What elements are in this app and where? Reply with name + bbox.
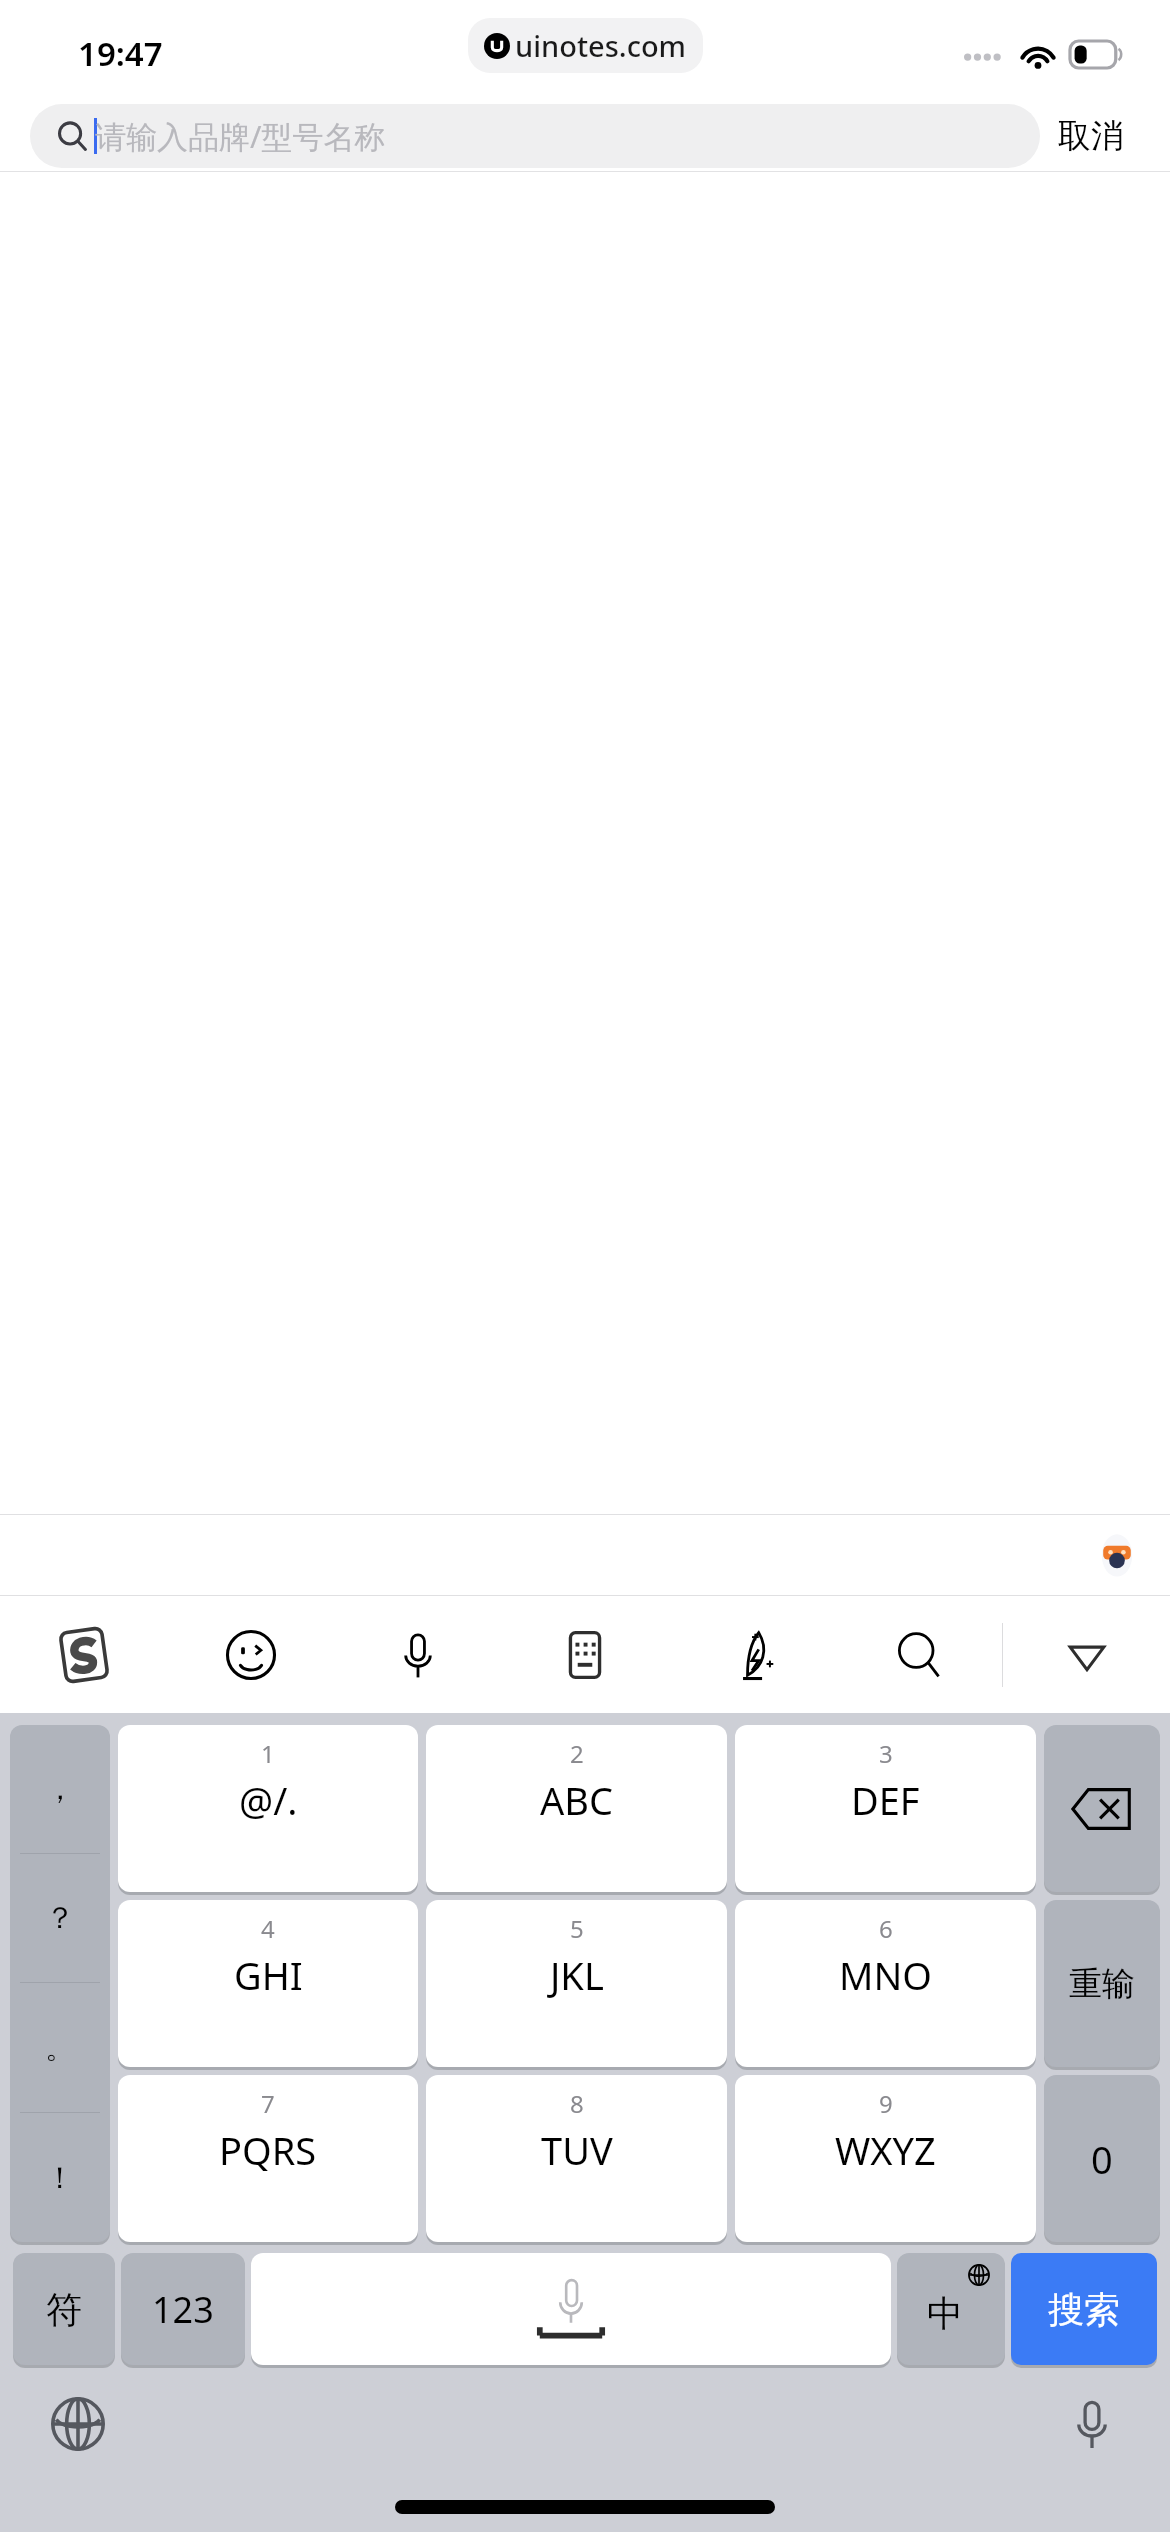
staticText: 0 bbox=[1091, 2133, 1113, 2185]
staticText: 6 bbox=[879, 1912, 893, 1945]
button[interactable]: 4 bbox=[118, 1900, 418, 2067]
button[interactable]: ， bbox=[10, 1725, 110, 2242]
staticText: 请输入品牌/型号名称 bbox=[95, 115, 386, 157]
staticText: 8 bbox=[570, 2087, 584, 2120]
staticText: @/. bbox=[239, 1774, 298, 1826]
staticText: TUV bbox=[541, 2124, 613, 2176]
staticText: 4 bbox=[261, 1912, 275, 1945]
staticText: 符 bbox=[46, 2287, 82, 2332]
staticText: 9 bbox=[879, 2087, 893, 2120]
staticText: 19:47 bbox=[78, 31, 163, 76]
button[interactable]: 9 bbox=[735, 2075, 1036, 2242]
staticText: 1 bbox=[261, 1737, 275, 1770]
button[interactable]: Keyboard layout bbox=[501, 1596, 668, 1713]
button[interactable]: 0 bbox=[1044, 2075, 1160, 2242]
staticText: 7 bbox=[261, 2087, 275, 2120]
staticText: 5 bbox=[570, 1912, 584, 1945]
other: Space bbox=[251, 2253, 891, 2365]
button[interactable]: 2 bbox=[426, 1725, 727, 1892]
staticText: 取消 bbox=[1058, 115, 1124, 157]
other: Delete bbox=[1044, 1725, 1160, 1892]
button[interactable]: 符 bbox=[13, 2253, 115, 2365]
button[interactable]: Dictation bbox=[1062, 2394, 1122, 2454]
other: Switch language bbox=[897, 2253, 1005, 2365]
staticText: ABC bbox=[540, 1774, 613, 1826]
staticText: MNO bbox=[839, 1949, 933, 2001]
staticText: 2 bbox=[570, 1737, 584, 1770]
button[interactable]: 中 bbox=[897, 2253, 1005, 2365]
staticText: 重输 bbox=[1069, 1963, 1135, 2005]
button[interactable]: Sogou keyboard bbox=[0, 1596, 167, 1713]
staticText: WXYZ bbox=[835, 2124, 936, 2176]
staticText: ， bbox=[45, 1770, 75, 1808]
button[interactable] bbox=[1044, 1725, 1160, 1892]
staticText: 中 bbox=[927, 2291, 963, 2336]
button[interactable]: Handwriting bbox=[668, 1596, 835, 1713]
staticText: ！ bbox=[45, 2159, 75, 2197]
button[interactable]: 6 bbox=[735, 1900, 1036, 2067]
button[interactable]: 搜索 bbox=[1011, 2253, 1157, 2365]
button[interactable]: Change keyboard bbox=[48, 2394, 108, 2454]
staticText: PQRS bbox=[219, 2124, 317, 2176]
staticText: 123 bbox=[152, 2285, 214, 2334]
button[interactable]: 5 bbox=[426, 1900, 727, 2067]
staticText: JKL bbox=[550, 1949, 604, 2001]
button[interactable] bbox=[251, 2253, 891, 2365]
staticText: uinotes.com bbox=[515, 26, 687, 65]
button[interactable]: 重输 bbox=[1044, 1900, 1160, 2067]
button[interactable]: 1 bbox=[118, 1725, 418, 1892]
button[interactable]: Voice input bbox=[334, 1596, 501, 1713]
staticText: 。 bbox=[45, 2029, 75, 2067]
staticText: 3 bbox=[879, 1737, 893, 1770]
staticText: GHI bbox=[234, 1949, 303, 2001]
button[interactable]: Search bbox=[835, 1596, 1002, 1713]
other: Search bbox=[56, 120, 88, 152]
staticText: ？ bbox=[45, 1899, 75, 1937]
button[interactable]: Emoji bbox=[167, 1596, 334, 1713]
button[interactable]: 取消 bbox=[1040, 105, 1142, 167]
button[interactable]: 8 bbox=[426, 2075, 727, 2242]
staticText: DEF bbox=[851, 1774, 920, 1826]
button[interactable]: 123 bbox=[121, 2253, 245, 2365]
button[interactable]: 7 bbox=[118, 2075, 418, 2242]
button[interactable]: 3 bbox=[735, 1725, 1036, 1892]
button[interactable]: Hide keyboard bbox=[1003, 1596, 1170, 1713]
staticText: 搜索 bbox=[1048, 2287, 1120, 2332]
button[interactable]: Search bbox=[30, 104, 1040, 168]
button[interactable]: Mascot bbox=[1094, 1532, 1140, 1578]
